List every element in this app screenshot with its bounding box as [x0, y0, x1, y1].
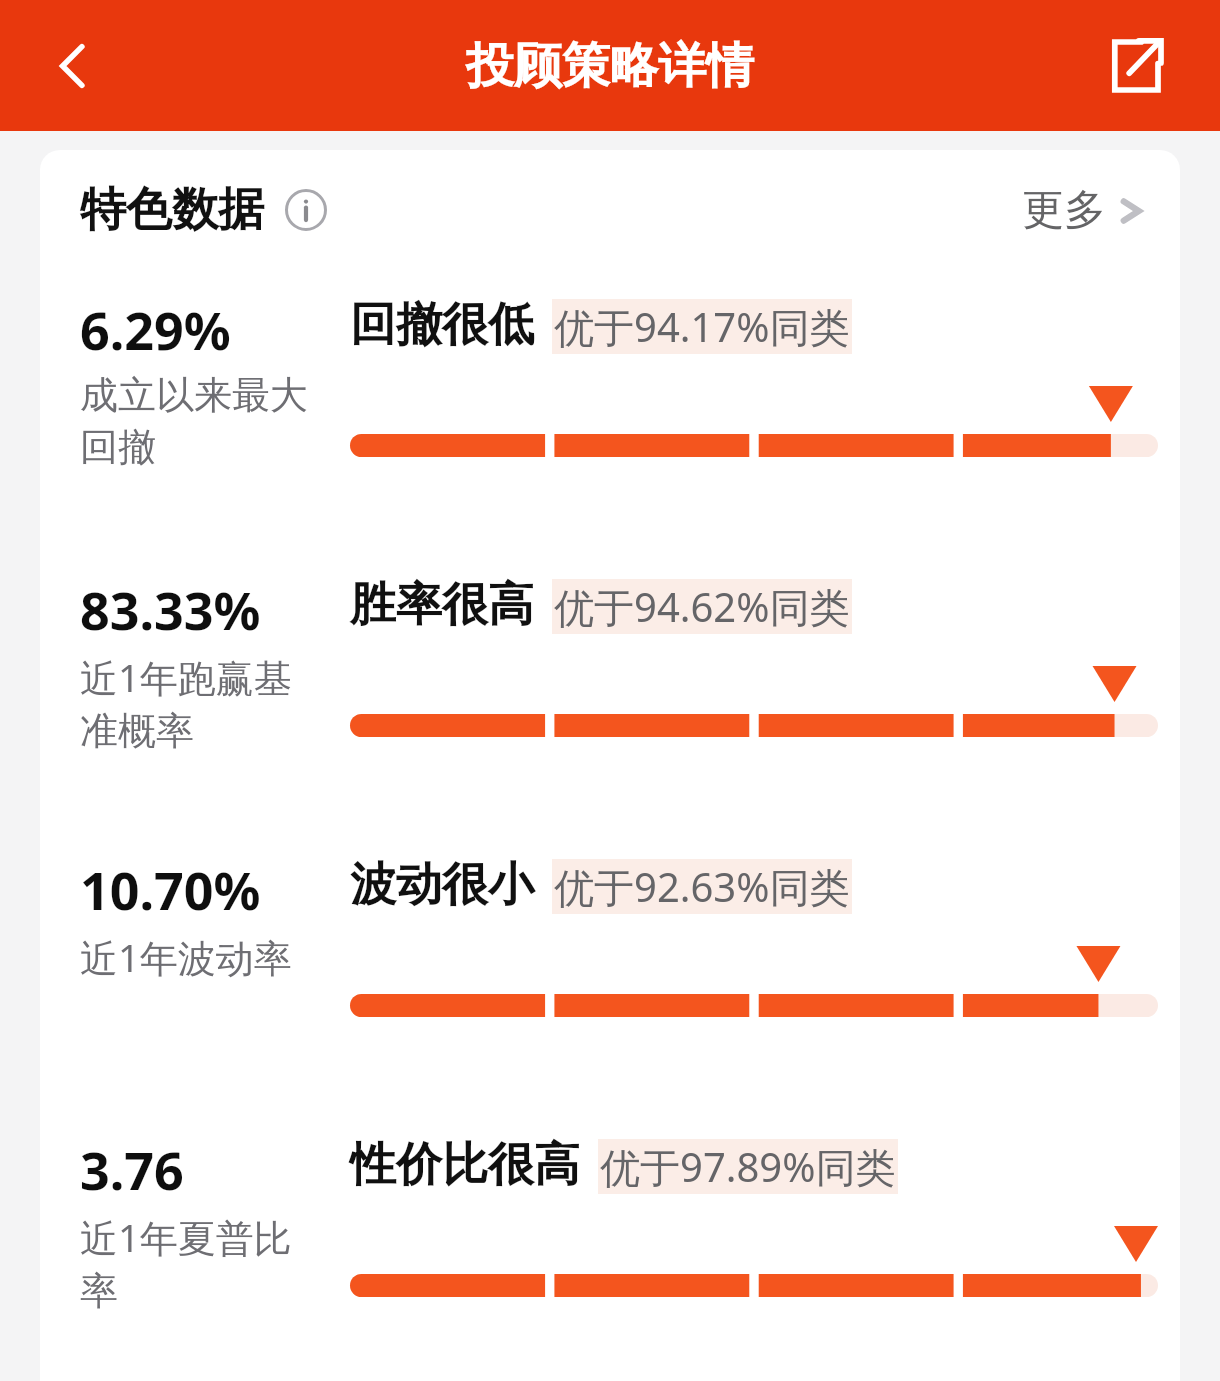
staticText: 近1年波动率 — [80, 931, 292, 983]
staticText: 6.29% — [80, 294, 231, 365]
staticText: 优于94.17%同类 — [554, 299, 850, 354]
staticText: 成立以来最大 回撤 — [80, 371, 308, 471]
staticText: 更多 — [1022, 184, 1106, 237]
button[interactable]: Info — [280, 184, 332, 236]
staticText: 优于92.63%同类 — [554, 859, 850, 914]
staticText: 近1年夏普比 率 — [80, 1211, 292, 1315]
staticText: 性价比很高 — [350, 1136, 580, 1194]
staticText: 回撤很低 — [350, 296, 534, 354]
button[interactable]: 更多 — [1012, 174, 1154, 247]
staticText: 3.76 — [80, 1134, 184, 1205]
staticText: 特色数据 — [80, 181, 264, 239]
staticText: 83.33% — [80, 574, 261, 645]
button[interactable]: 6.29% — [40, 270, 1180, 550]
staticText: 优于97.89%同类 — [600, 1139, 896, 1194]
staticText: 近1年跑赢基 准概率 — [80, 651, 292, 755]
button[interactable]: 83.33% — [40, 550, 1180, 830]
staticText: 10.70% — [80, 854, 261, 925]
staticText: 优于94.62%同类 — [554, 579, 850, 634]
button[interactable]: Back — [26, 18, 122, 114]
staticText: 胜率很高 — [350, 576, 534, 634]
button[interactable]: Share — [1088, 20, 1180, 112]
button[interactable]: 3.76 — [40, 1110, 1180, 1381]
button[interactable]: 10.70% — [40, 830, 1180, 1110]
staticText: 投顾策略详情 — [466, 36, 754, 96]
staticText: 波动很小 — [350, 856, 534, 914]
